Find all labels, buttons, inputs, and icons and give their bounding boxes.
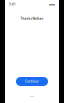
button[interactable]: Continue bbox=[16, 77, 48, 86]
staticText: Continue bbox=[25, 80, 39, 83]
staticText: Thanks Nathan bbox=[20, 17, 43, 20]
staticText: ▪▪▪ bbox=[49, 3, 55, 6]
staticText: 9:41 bbox=[9, 3, 16, 6]
